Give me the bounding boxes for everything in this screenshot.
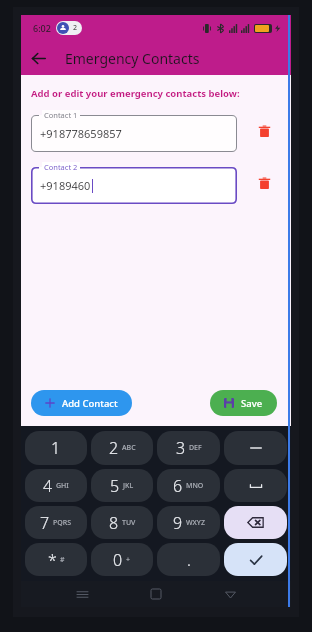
staticText: 5 (110, 475, 120, 497)
button[interactable]: Save (210, 390, 277, 416)
button[interactable]: 8TUV (91, 506, 153, 539)
staticText: . (187, 549, 191, 571)
button[interactable]: 2ABC (91, 431, 153, 465)
button[interactable]: Back (21, 41, 55, 75)
staticText: DEF (189, 443, 202, 453)
button[interactable]: Home (143, 581, 169, 607)
staticText: +9189460 (40, 178, 91, 193)
staticText: JKL (123, 481, 134, 491)
button[interactable]: Delete contact (249, 116, 279, 146)
button[interactable]: 0+ (91, 543, 153, 576)
staticText: Contact 2 (44, 162, 78, 172)
button[interactable]: Recents (69, 581, 95, 607)
button[interactable]: Enter (224, 543, 287, 576)
staticText: WXYZ (186, 518, 205, 528)
staticText: # (60, 555, 65, 565)
staticText: Save (241, 397, 263, 410)
staticText: * (48, 549, 57, 571)
staticText: + (126, 555, 131, 565)
button[interactable]: Add Contact (31, 390, 132, 416)
button[interactable]: . (157, 543, 220, 576)
staticText: MNO (186, 481, 204, 491)
button[interactable] (31, 167, 237, 204)
button[interactable]: 6MNO (157, 469, 220, 502)
button[interactable]: 4GHI (25, 469, 87, 502)
button[interactable]: Back (217, 581, 243, 607)
staticText: Add Contact (62, 397, 118, 410)
staticText: 7 (40, 512, 50, 534)
staticText: PQRS (53, 518, 72, 528)
button[interactable]: Dash (224, 431, 287, 465)
button[interactable]: 3DEF (157, 431, 220, 465)
staticText: 2 (109, 437, 119, 459)
button[interactable]: 9WXYZ (157, 506, 220, 539)
staticText: 2 (73, 23, 78, 33)
button[interactable]: 5JKL (91, 469, 153, 502)
staticText: 3 (176, 437, 186, 459)
button[interactable]: Delete contact (249, 168, 279, 198)
staticText: 6:02 (33, 22, 51, 34)
staticText: 4 (43, 475, 53, 497)
staticText: Emergency Contacts (65, 49, 200, 68)
button[interactable]: 7PQRS (25, 506, 87, 539)
staticText: GHI (56, 481, 69, 491)
button[interactable] (31, 115, 237, 152)
staticText: 1 (51, 437, 61, 459)
staticText: 0 (113, 549, 123, 571)
button[interactable]: *# (25, 543, 87, 576)
staticText: 9 (173, 512, 183, 534)
staticText: Add or edit your emergency contacts belo… (31, 87, 240, 100)
button[interactable]: Backspace (224, 506, 287, 539)
staticText: TUV (122, 518, 136, 528)
staticText: 8 (109, 512, 119, 534)
staticText: +918778659857 (40, 126, 122, 141)
staticText: Contact 1 (44, 110, 78, 120)
staticText: ABC (122, 443, 136, 453)
button[interactable]: 1 (25, 431, 87, 465)
button[interactable]: Space (224, 469, 287, 502)
staticText: 6 (173, 475, 183, 497)
